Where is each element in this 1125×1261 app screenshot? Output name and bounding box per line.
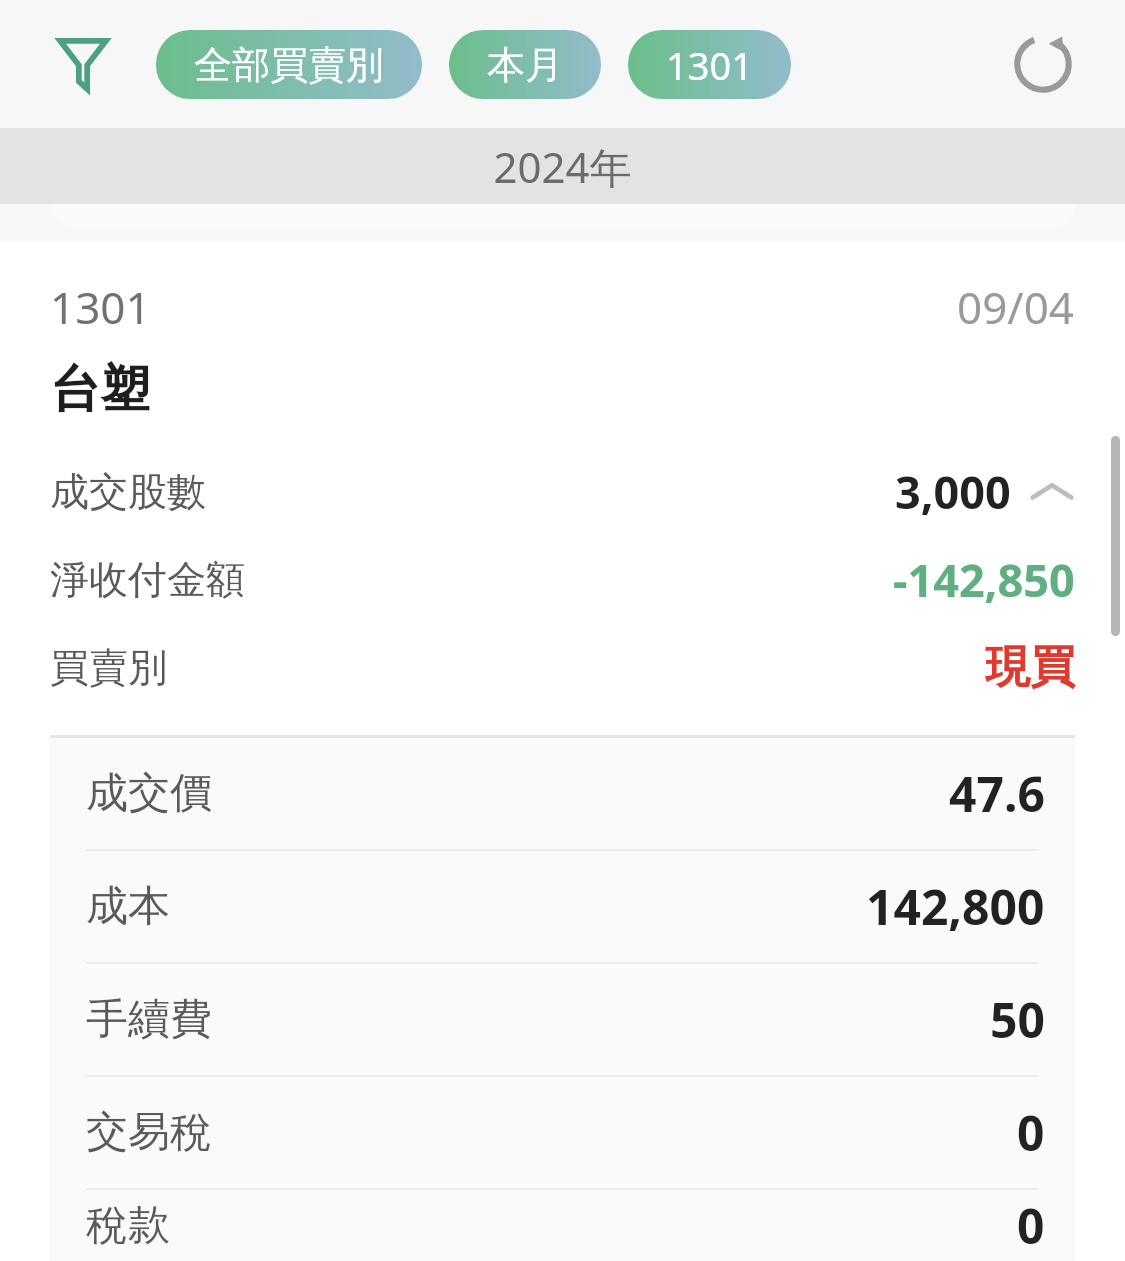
staticText: 0 xyxy=(1017,1100,1045,1165)
staticText: 成本 xyxy=(86,880,170,933)
staticText: 淨收付金額 xyxy=(50,555,245,604)
button[interactable]: Filter xyxy=(46,27,120,101)
staticText: 1301 xyxy=(666,39,753,91)
staticText: 1301 xyxy=(50,277,151,337)
staticText: -142,850 xyxy=(893,549,1075,610)
button[interactable]: 交易稅 xyxy=(50,1077,1075,1188)
button[interactable]: 手續費 xyxy=(50,964,1075,1075)
button[interactable]: 成交價 xyxy=(50,738,1075,849)
staticText: 全部買賣別 xyxy=(194,41,384,89)
staticText: 本月 xyxy=(487,41,563,89)
staticText: 交易稅 xyxy=(86,1106,212,1159)
button[interactable]: 成交股數 xyxy=(0,447,1125,535)
staticText: 142,800 xyxy=(866,874,1045,939)
staticText: 0 xyxy=(1017,1193,1045,1258)
button[interactable]: 稅款 xyxy=(50,1190,1075,1261)
button[interactable]: 全部買賣別 xyxy=(156,30,422,99)
staticText: 現買 xyxy=(985,639,1075,696)
staticText: 3,000 xyxy=(895,461,1011,522)
button[interactable]: 成本 xyxy=(50,851,1075,962)
button[interactable]: 1301 xyxy=(0,276,1125,338)
staticText: 買賣別 xyxy=(50,643,167,692)
button[interactable]: 1301 xyxy=(628,30,791,99)
button[interactable]: 本月 xyxy=(449,30,601,99)
button[interactable]: Refresh xyxy=(1001,22,1085,106)
button[interactable]: 買賣別 xyxy=(0,623,1125,711)
button[interactable]: 淨收付金額 xyxy=(0,535,1125,623)
staticText: 成交價 xyxy=(86,767,212,820)
staticText: 47.6 xyxy=(949,761,1045,826)
staticText: 09/04 xyxy=(957,277,1075,337)
staticText: 50 xyxy=(990,987,1045,1052)
staticText: 稅款 xyxy=(86,1199,170,1252)
staticText: 2024年 xyxy=(493,138,632,195)
staticText: 台塑 xyxy=(50,358,150,421)
staticText: 成交股數 xyxy=(50,467,206,516)
staticText: 手續費 xyxy=(86,993,212,1046)
